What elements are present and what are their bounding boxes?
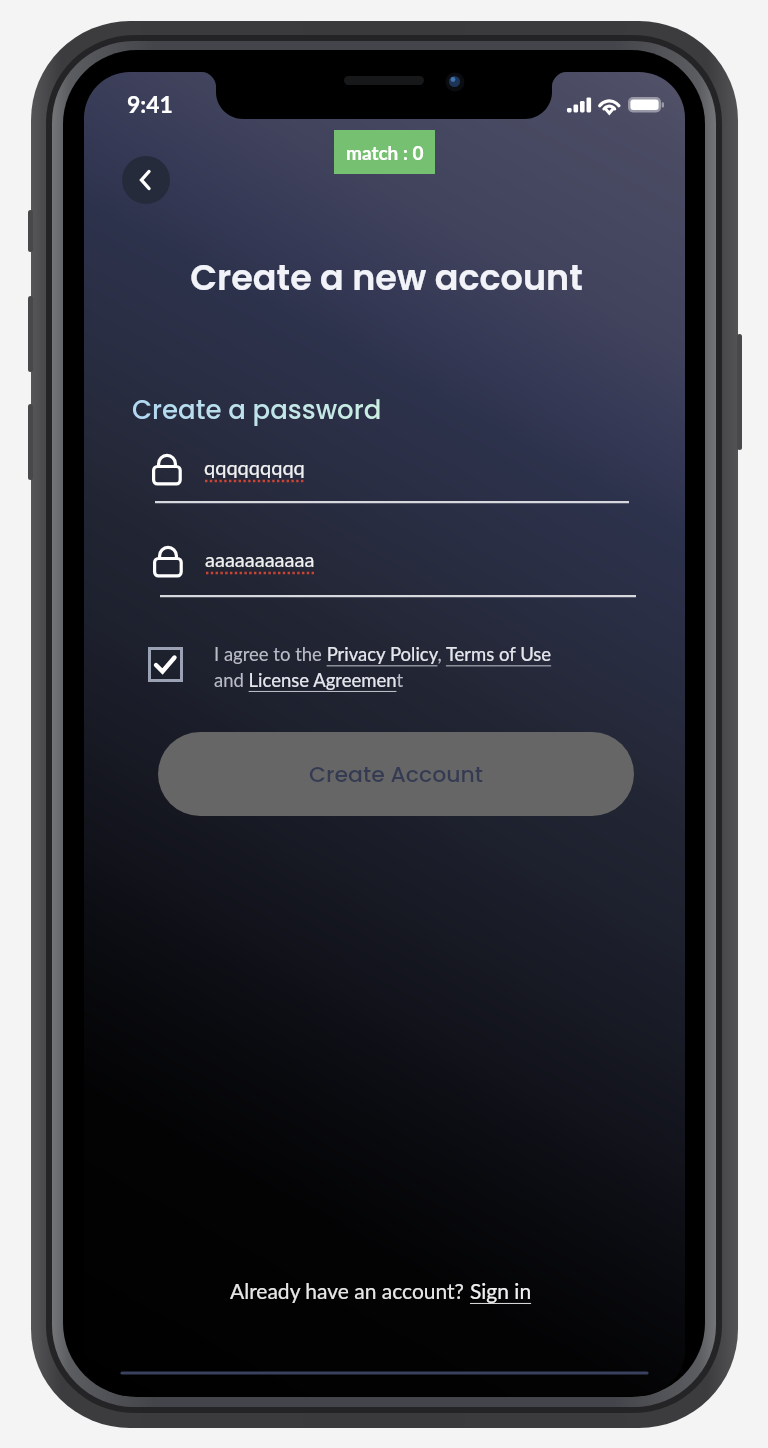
staticText: Create Account: [309, 759, 483, 790]
other: Password: [153, 545, 183, 575]
staticText: aaaaaaaaaaa: [205, 547, 315, 571]
staticText: Sign in: [470, 1278, 532, 1303]
staticText: 9:41: [127, 90, 173, 118]
staticText: Create a new account: [86, 253, 685, 302]
staticText: I agree to the Privacy Policy, Terms of …: [214, 643, 559, 691]
button[interactable]: aaaaaaaaaaa: [205, 545, 636, 579]
button[interactable]: Agree to terms: [148, 647, 183, 682]
staticText: qqqqqqqqq: [204, 455, 305, 479]
button[interactable]: Sign in: [470, 1278, 532, 1303]
button[interactable]: Back: [122, 156, 170, 204]
staticText: Already have an account?: [230, 1278, 470, 1303]
staticText: match : 0: [346, 141, 424, 164]
staticText: Create a password: [132, 392, 382, 428]
button[interactable]: Create Account: [158, 732, 634, 816]
other: Password: [152, 453, 182, 483]
button[interactable]: qqqqqqqqq: [204, 453, 629, 487]
button[interactable]: match : 0: [334, 130, 435, 174]
